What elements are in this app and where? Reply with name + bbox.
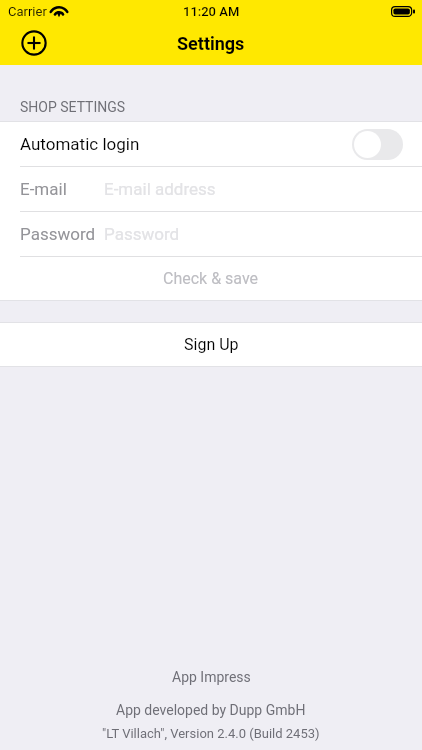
staticText: App Impress: [172, 669, 251, 685]
staticText: Settings: [177, 33, 245, 54]
staticText: Sign Up: [184, 335, 239, 354]
staticText: 11:20 AM: [183, 4, 240, 19]
button[interactable]: Check & save: [0, 257, 422, 300]
staticText: SHOP SETTINGS: [20, 99, 126, 115]
button[interactable]: Password: [0, 212, 422, 256]
button[interactable]: E-mail: [0, 167, 422, 211]
staticText: App developed by Dupp GmbH: [116, 702, 306, 718]
button[interactable]: Sign Up: [0, 322, 422, 366]
button[interactable]: Automatic login toggle: [352, 129, 403, 160]
staticText: Password: [20, 224, 96, 244]
button[interactable]: App Impress: [158, 666, 265, 688]
button[interactable]: Add: [13, 22, 54, 63]
staticText: Check & save: [163, 269, 259, 288]
staticText: "LT Villach", Version 2.4.0 (Build 2453): [102, 726, 320, 741]
staticText: E-mail: [20, 179, 67, 199]
staticText: Carrier: [8, 4, 47, 19]
staticText: E-mail address: [104, 179, 216, 199]
staticText: Automatic login: [20, 134, 140, 154]
button[interactable]: Automatic login: [0, 122, 422, 166]
staticText: Password: [104, 224, 180, 244]
